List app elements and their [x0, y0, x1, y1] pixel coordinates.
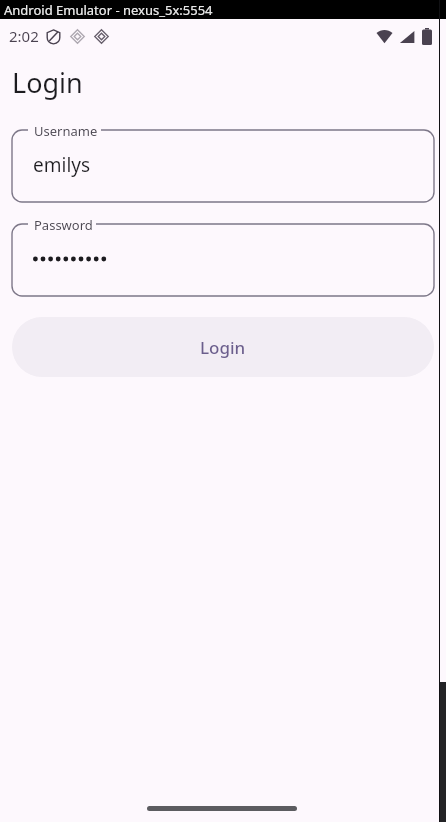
- button[interactable]: Login: [12, 317, 434, 377]
- staticText: emilys: [33, 152, 91, 178]
- staticText: Password: [34, 216, 93, 234]
- staticText: Android Emulator - nexus_5x:5554: [4, 1, 213, 19]
- staticText: Login: [12, 64, 83, 101]
- staticText: Login: [200, 336, 246, 359]
- staticText: Username: [34, 122, 98, 140]
- button[interactable]: Password: [12, 216, 434, 296]
- button[interactable]: Username: [12, 122, 434, 202]
- staticText: 2:02: [9, 26, 39, 46]
